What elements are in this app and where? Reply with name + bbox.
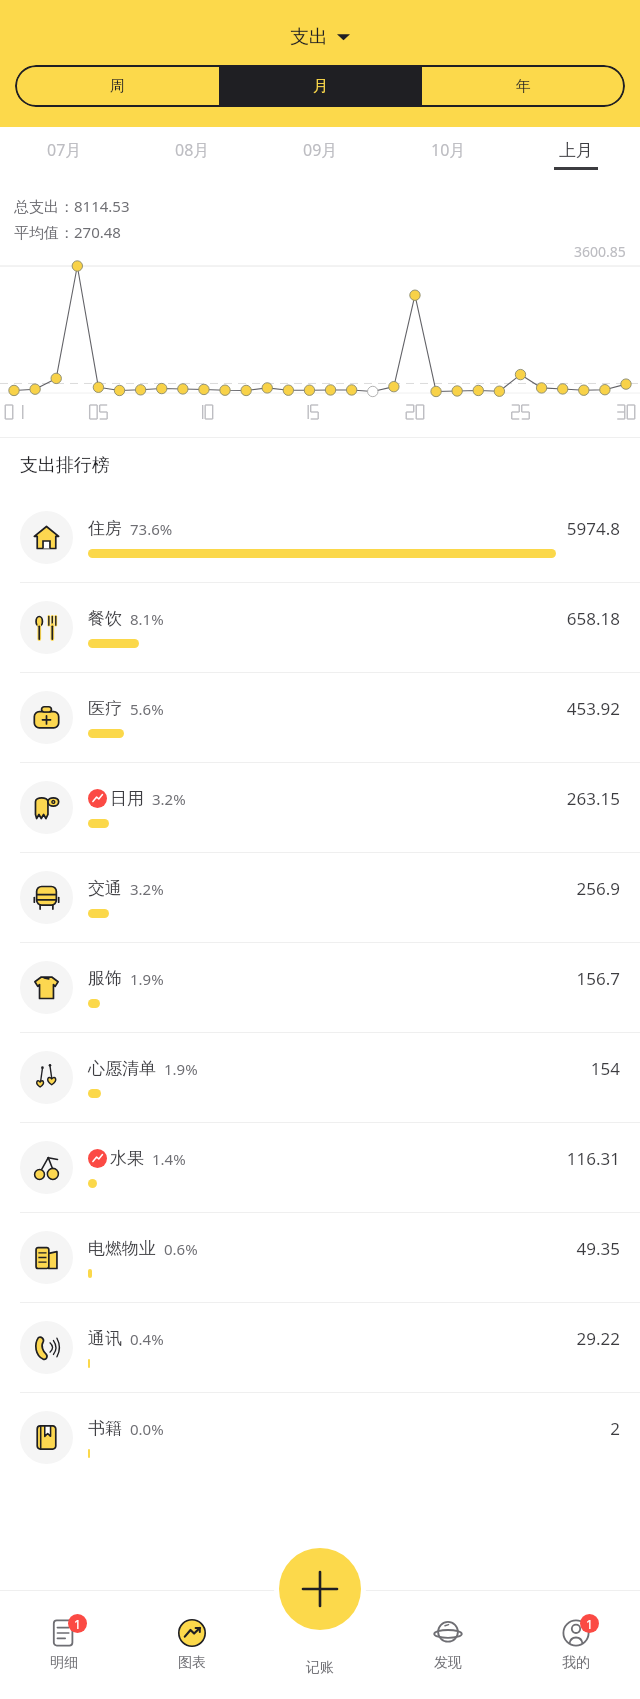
staticText: 日用 [110, 788, 144, 809]
staticText: 我的 [562, 1654, 590, 1672]
staticText: 5974.8 [566, 517, 620, 540]
staticText: 1.9% [130, 969, 164, 989]
staticText: 256.9 [576, 877, 620, 900]
staticText: 电燃物业 [88, 1238, 156, 1259]
button[interactable]: 通讯 [0, 1302, 640, 1392]
staticText: 10月 [431, 139, 466, 161]
staticText: 5.6% [130, 699, 164, 719]
staticText: 上月 [559, 140, 593, 161]
button[interactable]: 住房 [0, 493, 640, 582]
button[interactable]: 支出 [278, 22, 362, 52]
staticText: 住房 [88, 518, 122, 539]
staticText: 1 [74, 1616, 81, 1632]
staticText: 156.7 [576, 967, 620, 990]
staticText: 心愿清单 [88, 1058, 156, 1079]
staticText: 8.1% [130, 609, 164, 629]
staticText: 1.9% [164, 1059, 198, 1079]
button[interactable]: 年 [422, 65, 625, 107]
button[interactable]: 医疗 [0, 672, 640, 762]
button[interactable]: 发现 [384, 1590, 512, 1699]
button[interactable]: 周 [15, 65, 219, 107]
staticText: 图表 [178, 1654, 206, 1672]
staticText: 总支出：8114.53 [14, 196, 130, 216]
staticText: 0.6% [164, 1239, 198, 1259]
staticText: 月 [313, 77, 328, 96]
staticText: 交通 [88, 878, 122, 899]
button[interactable]: 心愿清单 [0, 1032, 640, 1122]
staticText: 发现 [434, 1654, 462, 1672]
staticText: 0.0% [130, 1419, 164, 1439]
staticText: 453.92 [566, 697, 620, 720]
button[interactable]: 09月 [256, 127, 384, 182]
button[interactable]: 记账 [256, 1590, 384, 1699]
staticText: 服饰 [88, 968, 122, 989]
staticText: 3600.85 [574, 242, 626, 261]
staticText: 09月 [303, 139, 338, 161]
staticText: 3.2% [130, 879, 164, 899]
button[interactable]: 1 [0, 1590, 128, 1699]
button[interactable]: 日用 [0, 762, 640, 852]
staticText: 49.35 [576, 1237, 620, 1260]
staticText: 支出 [290, 25, 328, 49]
staticText: 通讯 [88, 1328, 122, 1349]
staticText: 1.4% [152, 1149, 186, 1169]
staticText: 1 [586, 1616, 593, 1632]
staticText: 周 [110, 77, 125, 96]
button[interactable]: 交通 [0, 852, 640, 942]
staticText: 0.4% [130, 1329, 164, 1349]
staticText: 明细 [50, 1654, 78, 1672]
staticText: 263.15 [566, 787, 620, 810]
staticText: 29.22 [576, 1327, 620, 1350]
staticText: 平均值：270.48 [14, 222, 121, 242]
staticText: 年 [516, 77, 531, 96]
button[interactable]: 水果 [0, 1122, 640, 1212]
button[interactable]: 餐饮 [0, 582, 640, 672]
button[interactable]: 月 [219, 65, 422, 107]
button[interactable]: 服饰 [0, 942, 640, 1032]
button[interactable]: 1 [512, 1590, 640, 1699]
staticText: 记账 [306, 1659, 334, 1677]
staticText: 154 [590, 1057, 620, 1080]
button[interactable]: 上月 [512, 127, 640, 182]
staticText: 水果 [110, 1148, 144, 1169]
staticText: 73.6% [130, 519, 173, 539]
staticText: 支出排行榜 [20, 454, 110, 477]
button[interactable]: 图表 [128, 1590, 256, 1699]
staticText: 658.18 [566, 607, 620, 630]
staticText: 餐饮 [88, 608, 122, 629]
button[interactable]: 电燃物业 [0, 1212, 640, 1302]
staticText: 医疗 [88, 698, 122, 719]
staticText: 2 [610, 1417, 620, 1440]
staticText: 3.2% [152, 789, 186, 809]
staticText: 116.31 [566, 1147, 620, 1170]
button[interactable]: 08月 [128, 127, 256, 182]
staticText: 07月 [47, 139, 82, 161]
staticText: 08月 [175, 139, 210, 161]
button[interactable]: 书籍 [0, 1392, 640, 1482]
button[interactable]: 07月 [0, 127, 128, 182]
button[interactable]: 10月 [384, 127, 512, 182]
staticText: 书籍 [88, 1418, 122, 1439]
button[interactable]: 记账 [279, 1548, 361, 1630]
